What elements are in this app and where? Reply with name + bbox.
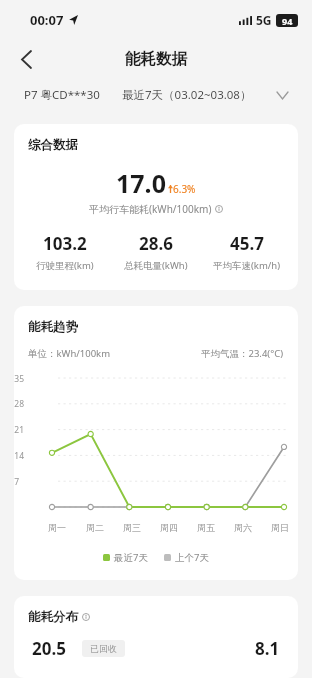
staticText: 6.3% bbox=[173, 182, 196, 196]
staticText: 周日 bbox=[271, 522, 289, 533]
staticText: 21 bbox=[14, 424, 24, 436]
staticText: 周五 bbox=[197, 522, 215, 533]
staticText: 周四 bbox=[160, 522, 178, 533]
staticText: 00:07 bbox=[30, 11, 64, 29]
staticText: P7 粤CD***30 bbox=[24, 87, 100, 103]
staticText: 能耗趋势 bbox=[28, 319, 78, 335]
staticText: 7 bbox=[14, 476, 19, 488]
staticText: 94 bbox=[282, 15, 293, 27]
staticText: 周一 bbox=[48, 522, 66, 533]
staticText: 35 bbox=[14, 373, 24, 385]
staticText: 14 bbox=[14, 450, 24, 462]
staticText: 17.0 bbox=[116, 166, 166, 200]
staticText: 8.1 bbox=[255, 637, 280, 660]
staticText: 能耗分布 bbox=[28, 609, 78, 625]
staticText: 45.7 bbox=[230, 232, 264, 255]
staticText: 总耗电量(kWh) bbox=[124, 259, 188, 272]
staticText: 5G bbox=[256, 12, 272, 28]
staticText: 上个7天 bbox=[175, 551, 209, 564]
staticText: 周二 bbox=[86, 522, 104, 533]
staticText: 平均气温：23.4(°C) bbox=[201, 347, 284, 360]
staticText: 行驶里程(km) bbox=[36, 259, 94, 272]
staticText: 单位：kWh/100km bbox=[28, 347, 111, 360]
staticText: 综合数据 bbox=[28, 137, 78, 153]
staticText: 28.6 bbox=[139, 232, 173, 255]
staticText: 能耗数据 bbox=[125, 49, 187, 69]
staticText: 103.2 bbox=[43, 232, 87, 255]
staticText: 周六 bbox=[234, 522, 252, 533]
staticText: 28 bbox=[14, 398, 24, 410]
staticText: 最近7天 bbox=[114, 551, 148, 564]
button[interactable]: 最近7天（03.02~03.08） bbox=[122, 87, 288, 103]
button[interactable]: 上个7天 bbox=[164, 551, 209, 564]
button[interactable]: 最近7天 bbox=[103, 551, 148, 564]
staticText: 20.5 bbox=[32, 637, 66, 660]
staticText: 平均行车能耗(kWh/100km) bbox=[89, 202, 212, 216]
button[interactable]: Back bbox=[8, 41, 44, 77]
staticText: 平均车速(km/h) bbox=[213, 259, 281, 272]
staticText: 已回收 bbox=[90, 643, 117, 654]
staticText: 最近7天（03.02~03.08） bbox=[122, 87, 252, 103]
staticText: 周三 bbox=[123, 522, 141, 533]
